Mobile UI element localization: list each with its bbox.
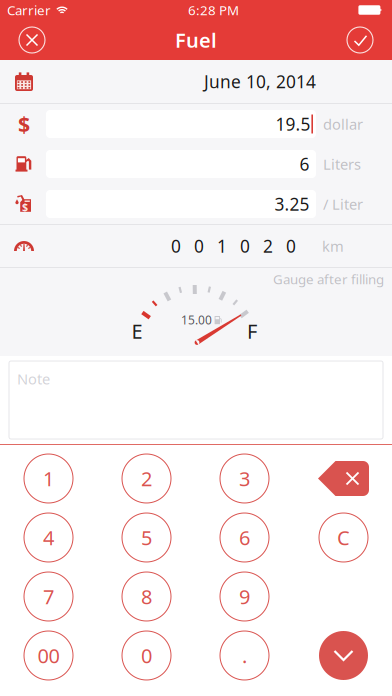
staticText: 0 [286, 234, 296, 257]
staticText: 3 [239, 465, 250, 492]
staticText: C [337, 524, 350, 551]
button[interactable]: 2 [122, 454, 171, 503]
staticText: $ [22, 200, 28, 214]
button[interactable]: Delete [318, 454, 369, 503]
staticText: 00 [37, 642, 59, 669]
button[interactable]: 6 [220, 513, 269, 562]
staticText: 7 [43, 583, 54, 610]
staticText: F [247, 318, 257, 344]
staticText: 1 [43, 465, 54, 492]
staticText: 8 [141, 583, 152, 610]
staticText: $ [18, 110, 30, 138]
staticText: 0 [141, 642, 152, 669]
button[interactable]: 4 [24, 513, 73, 562]
button[interactable]: $ [0, 184, 392, 224]
staticText: / Liter [323, 194, 363, 214]
button[interactable]: 9 [220, 572, 269, 621]
staticText: 4 [43, 524, 54, 551]
button[interactable]: . [220, 631, 269, 680]
staticText: 6:28 PM [188, 1, 239, 19]
button[interactable]: 6 [0, 144, 392, 184]
staticText: 2 [263, 234, 273, 257]
button[interactable]: Save [347, 27, 373, 53]
staticText: 6 [299, 152, 309, 175]
staticText: dollar [323, 114, 363, 134]
staticText: 5 [141, 524, 152, 551]
staticText: Gauge after filling [273, 270, 384, 288]
staticText: Fuel [175, 27, 217, 53]
button[interactable]: $ [0, 104, 392, 144]
staticText: Carrier [7, 1, 51, 19]
staticText: 0 [194, 234, 204, 257]
button[interactable]: 1 [24, 454, 73, 503]
staticText: 6 [239, 524, 250, 551]
button[interactable]: 0 [0, 225, 392, 267]
button[interactable]: Cancel [19, 27, 45, 53]
staticText: . [242, 642, 247, 669]
staticText: 19.5 [275, 112, 310, 135]
staticText: E [131, 318, 142, 344]
button[interactable]: 7 [24, 572, 73, 621]
button[interactable]: June 10, 2014 [0, 60, 392, 103]
staticText: km [322, 236, 344, 256]
staticText: June 10, 2014 [204, 70, 316, 93]
button[interactable]: 3 [220, 454, 269, 503]
staticText: 1 [217, 234, 227, 257]
staticText: Note [17, 369, 50, 388]
button[interactable]: 8 [122, 572, 171, 621]
staticText: 9 [239, 583, 250, 610]
staticText: 2 [141, 465, 152, 492]
button[interactable]: 0 [122, 631, 171, 680]
button[interactable]: 5 [122, 513, 171, 562]
staticText: 3.25 [274, 192, 309, 215]
button[interactable]: Hide keypad [319, 631, 368, 680]
button[interactable]: C [319, 513, 368, 562]
staticText: Liters [323, 154, 361, 174]
staticText: 0 [240, 234, 250, 257]
button[interactable]: 00 [24, 631, 73, 680]
staticText: 15.00 [181, 312, 212, 328]
staticText: 0 [171, 234, 181, 257]
